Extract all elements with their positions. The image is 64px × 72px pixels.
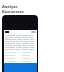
staticText: Businesses [2, 9, 24, 14]
button[interactable]: Filter [31, 31, 36, 33]
staticText: Analyze [2, 4, 18, 9]
